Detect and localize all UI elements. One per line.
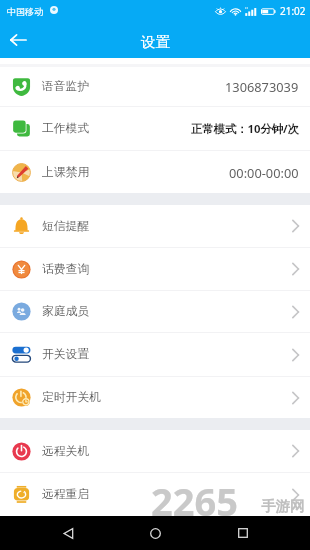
button[interactable]: 家庭成员 xyxy=(0,291,310,332)
button[interactable]: 远程重启 xyxy=(0,473,310,516)
staticText: 00:00-00:00 xyxy=(229,164,299,181)
staticText: 语音监护 xyxy=(42,79,90,94)
button[interactable]: 话费查询 xyxy=(0,248,310,290)
staticText: 短信提醒 xyxy=(42,219,90,234)
staticText: 1306873039 xyxy=(225,78,299,95)
staticText: 工作模式 xyxy=(42,121,90,136)
button[interactable]: 语音监护 xyxy=(0,67,310,106)
button[interactable]: Back xyxy=(48,516,88,550)
staticText: 2265 xyxy=(151,475,238,527)
button[interactable]: 开关设置 xyxy=(0,333,310,376)
staticText: 设置 xyxy=(141,33,170,51)
staticText: 开关设置 xyxy=(42,347,90,362)
button[interactable]: 远程关机 xyxy=(0,430,310,472)
staticText: 定时开关机 xyxy=(42,390,101,405)
button[interactable]: 定时开关机 xyxy=(0,377,310,418)
staticText: 21:02 xyxy=(280,4,306,18)
button[interactable]: Home xyxy=(135,516,175,550)
staticText: 话费查询 xyxy=(42,262,90,277)
staticText: 正常模式：10分钟/次 xyxy=(191,121,299,136)
button[interactable]: 工作模式 xyxy=(0,107,310,150)
staticText: 手游网 xyxy=(261,497,305,515)
button[interactable]: Recents xyxy=(223,516,263,550)
staticText: 家庭成员 xyxy=(42,304,90,319)
button[interactable]: Back xyxy=(0,22,36,58)
button[interactable]: 上课禁用 xyxy=(0,151,310,193)
staticText: 上课禁用 xyxy=(42,165,90,180)
staticText: 远程关机 xyxy=(42,444,90,459)
button[interactable]: 短信提醒 xyxy=(0,205,310,247)
staticText: 远程重启 xyxy=(42,487,90,502)
staticText: 中国移动 xyxy=(7,6,43,17)
